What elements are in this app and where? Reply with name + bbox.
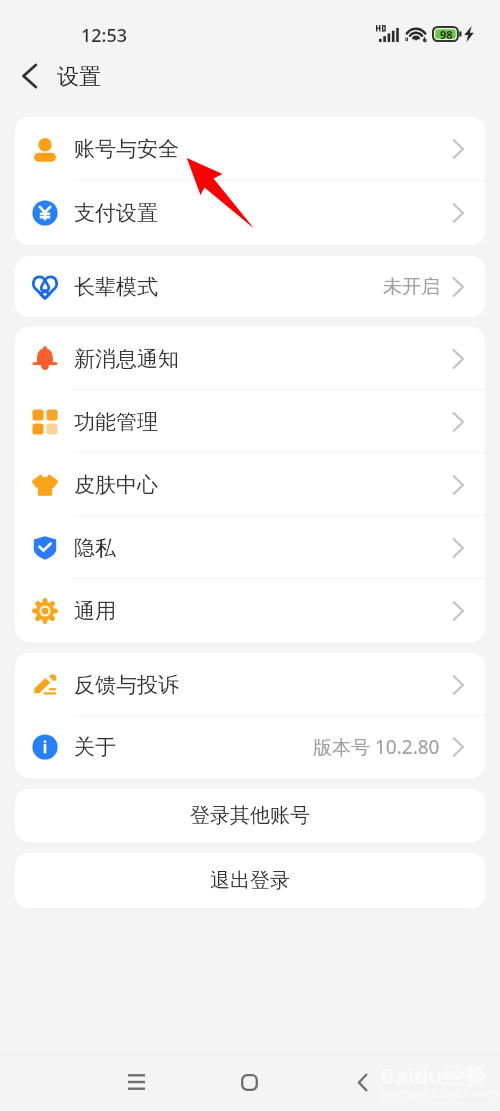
staticText: 未开启 (383, 275, 440, 299)
button[interactable]: 返回 (7, 54, 51, 98)
staticText: 12:53 (81, 23, 128, 48)
button[interactable]: 皮肤中心 (15, 453, 485, 516)
button[interactable]: 反馈与投诉 (15, 653, 485, 716)
staticText: 退出登录 (210, 868, 290, 893)
staticText: 新消息通知 (74, 346, 179, 372)
button[interactable]: 主页 (219, 1054, 279, 1110)
staticText: 长辈模式 (74, 274, 158, 300)
button[interactable]: 最近任务 (106, 1054, 166, 1110)
staticText: 设置 (57, 63, 101, 91)
button[interactable]: 退出登录 (15, 853, 485, 908)
button[interactable]: 登录其他账号 (15, 789, 485, 842)
button[interactable]: 通用 (15, 579, 485, 642)
staticText: 通用 (74, 598, 116, 624)
button[interactable]: 新消息通知 (15, 327, 485, 390)
staticText: 版本号 10.2.80 (313, 734, 440, 760)
staticText: 关于 (74, 734, 116, 760)
staticText: 账号与安全 (74, 136, 179, 162)
button[interactable]: 长辈模式 (15, 256, 485, 317)
staticText: 功能管理 (74, 409, 158, 435)
staticText: 反馈与投诉 (74, 672, 179, 698)
staticText: 支付设置 (74, 200, 158, 226)
button[interactable]: 支付设置 (15, 181, 485, 245)
button[interactable]: 隐私 (15, 516, 485, 579)
staticText: 隐私 (74, 535, 116, 561)
button[interactable]: 账号与安全 (15, 117, 485, 181)
staticText: 皮肤中心 (74, 472, 158, 498)
button[interactable]: 关于 (15, 716, 485, 778)
button[interactable]: 返回 (332, 1054, 392, 1110)
staticText: 98 (440, 27, 453, 42)
staticText: 登录其他账号 (190, 803, 310, 828)
button[interactable]: 功能管理 (15, 390, 485, 453)
